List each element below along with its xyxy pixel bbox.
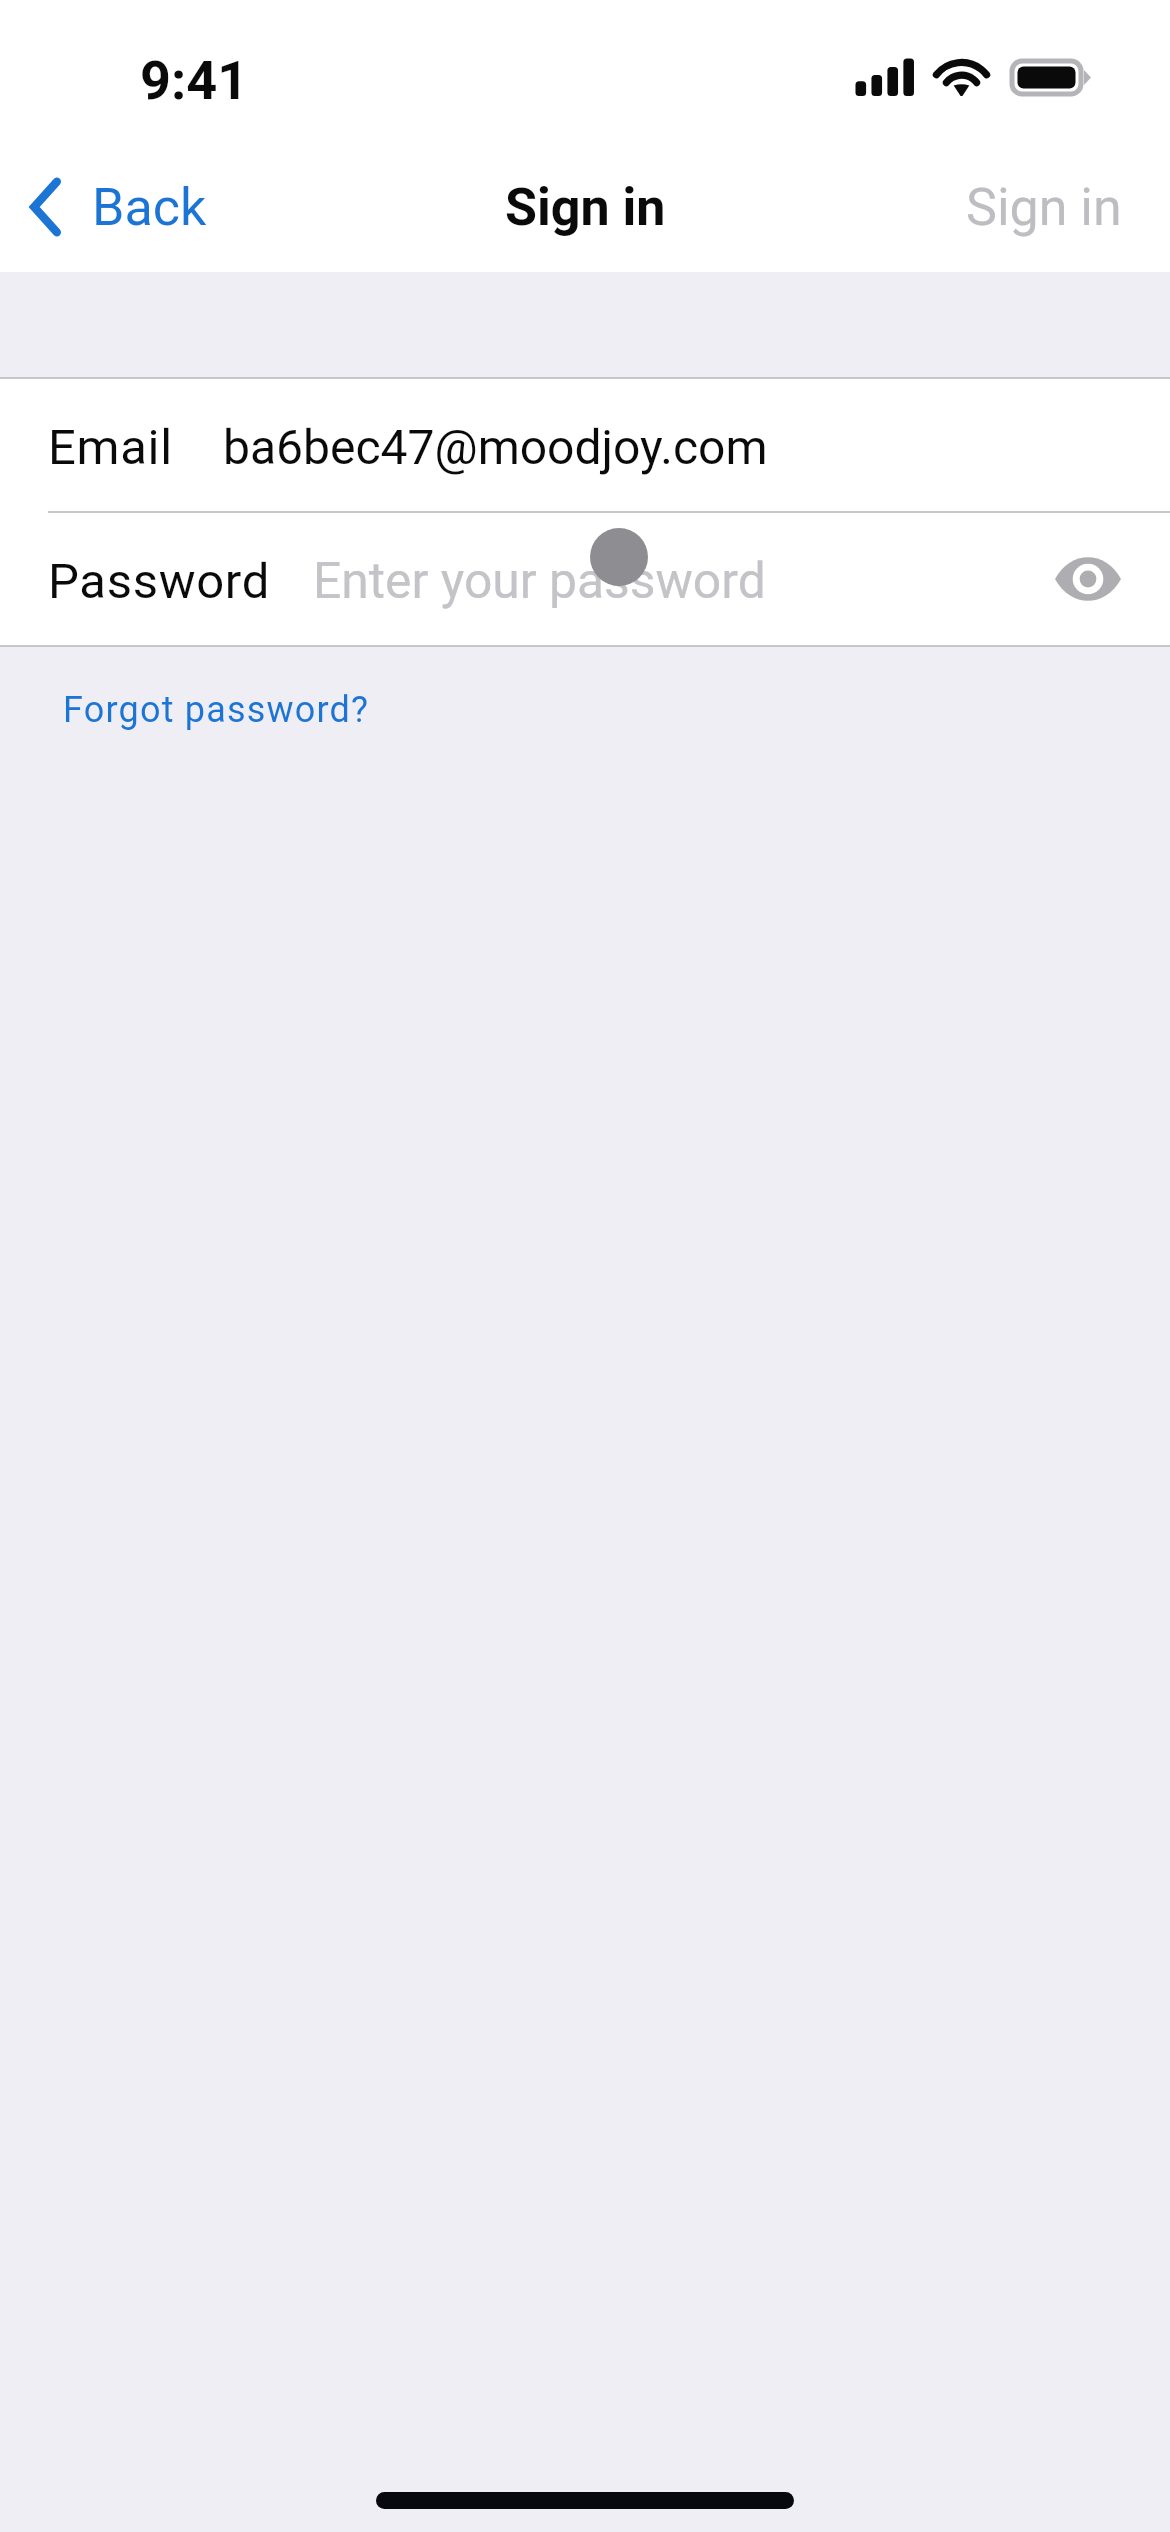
staticText: ba6bec47@moodjoy.com	[223, 419, 768, 475]
staticText: Password	[48, 553, 271, 610]
staticText: Enter your password	[313, 552, 766, 610]
staticText: Back	[92, 177, 207, 238]
button[interactable]: Back	[0, 167, 223, 247]
button[interactable]: Sign in	[918, 163, 1170, 252]
staticText: 9:41	[140, 49, 249, 112]
staticText: Sign in	[966, 177, 1122, 238]
button[interactable]: Email	[0, 379, 1170, 511]
button[interactable]: Password	[0, 513, 1170, 645]
button[interactable]: Forgot password?	[37, 675, 396, 745]
staticText: Forgot password?	[63, 689, 370, 731]
button[interactable]: Show password	[1055, 556, 1121, 602]
staticText: Email	[48, 419, 173, 476]
staticText: Sign in	[505, 177, 666, 238]
